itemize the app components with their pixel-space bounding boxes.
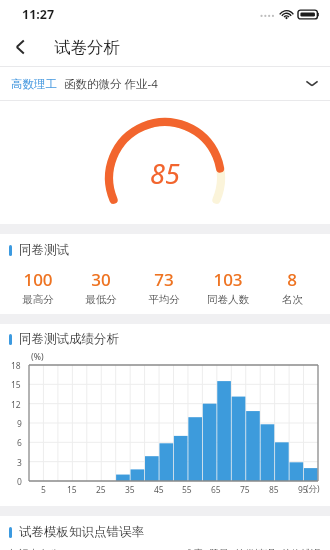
staticText: 难度	[183, 547, 203, 550]
staticText: 函数的微分 作业-4	[64, 76, 158, 92]
staticText: 试卷模板知识点错误率	[19, 524, 144, 540]
staticText: 名次	[282, 293, 303, 306]
staticText: 0	[17, 476, 22, 488]
staticText: 11:27	[22, 6, 55, 23]
staticText: 15	[67, 484, 77, 496]
staticText: 9	[17, 418, 22, 430]
staticText: 65	[211, 484, 221, 496]
staticText: 最高分	[22, 293, 54, 306]
staticText: 15	[11, 379, 21, 391]
staticText: 题量	[209, 547, 229, 550]
staticText: 95	[298, 484, 308, 496]
staticText: 8	[287, 268, 297, 291]
staticText: (分)	[306, 483, 320, 495]
staticText: 75	[240, 484, 250, 496]
staticText: 平均分	[148, 293, 180, 306]
staticText: (%)	[31, 351, 44, 363]
staticText: 知识点名称	[9, 547, 177, 550]
staticText: 18	[11, 360, 21, 372]
staticText: 同卷测试	[19, 242, 69, 258]
staticText: 试卷分析	[54, 37, 120, 58]
staticText: 同卷人数	[207, 293, 249, 306]
staticText: 高数理工	[11, 77, 57, 91]
staticText: 答卷情况	[235, 547, 275, 550]
staticText: 3	[17, 457, 22, 469]
staticText: 100	[23, 268, 53, 291]
staticText: 103	[213, 268, 243, 291]
button[interactable]: 高数理工	[0, 67, 330, 100]
staticText: 30	[91, 268, 111, 291]
staticText: 45	[154, 484, 164, 496]
staticText: 12	[11, 399, 21, 411]
staticText: 85	[150, 155, 180, 192]
staticText: 35	[125, 484, 135, 496]
staticText: 6	[17, 437, 22, 449]
staticText: 同卷测试成绩分析	[19, 331, 119, 347]
button[interactable]: Back	[0, 28, 40, 66]
staticText: 85	[269, 484, 279, 496]
staticText: 最低分	[85, 293, 117, 306]
staticText: 25	[96, 484, 106, 496]
staticText: 5	[41, 484, 46, 496]
staticText: 73	[154, 268, 174, 291]
staticText: 55	[182, 484, 192, 496]
staticText: 总体错误	[281, 547, 321, 550]
